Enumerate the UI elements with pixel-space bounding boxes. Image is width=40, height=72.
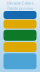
staticText: Palette preview [7,5,33,11]
staticText: Ukraine Colors [6,0,33,5]
